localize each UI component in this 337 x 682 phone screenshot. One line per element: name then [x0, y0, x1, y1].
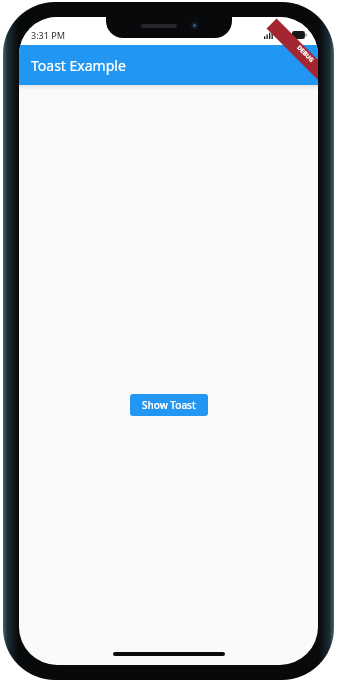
- button[interactable]: Show Toast: [130, 394, 208, 416]
- staticText: DEBUG: [295, 44, 316, 64]
- staticText: Toast Example: [31, 56, 126, 75]
- staticText: Show Toast: [142, 398, 196, 412]
- staticText: 5G: [277, 29, 289, 41]
- staticText: 3:31 PM: [31, 29, 65, 41]
